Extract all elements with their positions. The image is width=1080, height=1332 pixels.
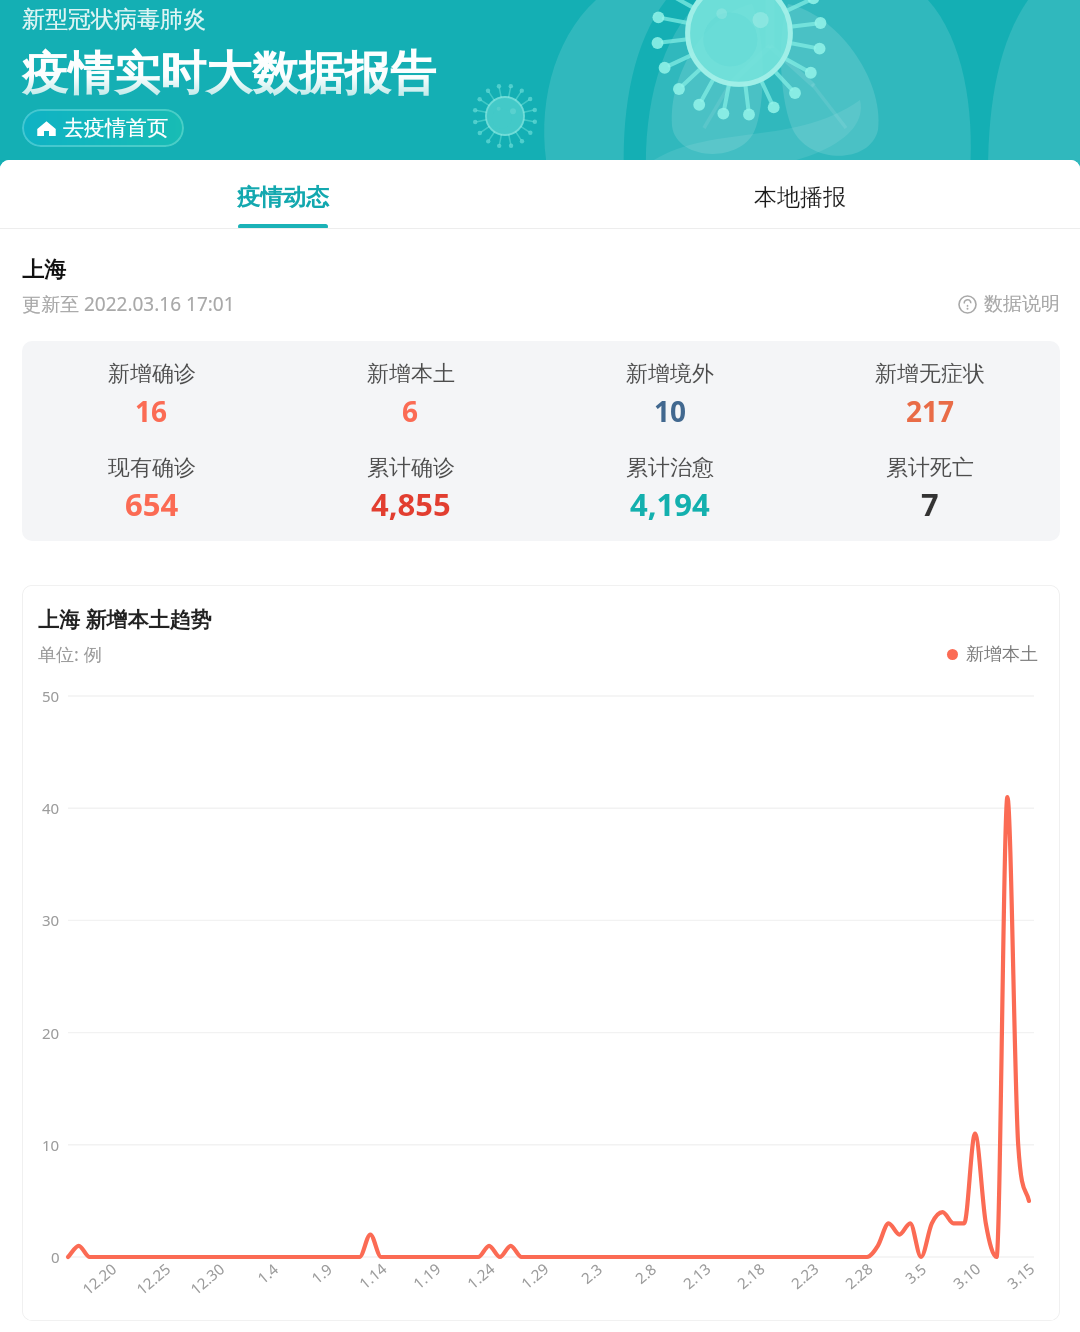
staticText: 本地播报 — [754, 183, 846, 212]
staticText: 上海 — [22, 256, 66, 284]
staticText: 疫情实时大数据报告 — [22, 45, 436, 103]
staticText: 4,194 — [630, 483, 710, 525]
staticText: 更新至 2022.03.16 17:01 — [22, 291, 235, 317]
button[interactable]: 数据说明 — [958, 292, 1060, 316]
staticText: 现有确诊 — [108, 454, 196, 482]
staticText: 新增确诊 — [108, 360, 196, 388]
staticText: 654 — [125, 483, 179, 525]
staticText: 去疫情首页 — [63, 115, 168, 141]
staticText: 累计确诊 — [367, 454, 455, 482]
staticText: 10 — [654, 392, 687, 430]
staticText: 新型冠状病毒肺炎 — [22, 5, 206, 34]
button[interactable]: 本地播报 — [541, 160, 1058, 229]
staticText: 4,855 — [371, 483, 451, 525]
staticText: 6 — [402, 392, 419, 430]
staticText: 累计治愈 — [626, 454, 714, 482]
staticText: 单位: 例 — [38, 642, 102, 667]
staticText: 上海 新增本土趋势 — [38, 605, 212, 634]
staticText: 新增本土 — [367, 360, 455, 388]
staticText: 7 — [921, 483, 939, 525]
staticText: 217 — [906, 392, 955, 430]
staticText: 数据说明 — [984, 292, 1060, 316]
staticText: 新增本土 — [966, 643, 1038, 666]
button[interactable]: 疫情动态 — [24, 160, 541, 229]
staticText: 16 — [135, 392, 168, 430]
staticText: 新增无症状 — [875, 360, 985, 388]
staticText: 疫情动态 — [237, 183, 329, 212]
button[interactable]: 去疫情首页 — [22, 109, 184, 147]
staticText: 累计死亡 — [886, 454, 974, 482]
staticText: 新增境外 — [626, 360, 714, 388]
